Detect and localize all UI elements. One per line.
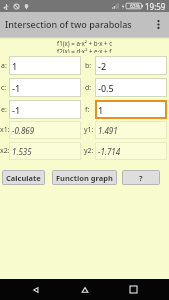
- button[interactable]: -1: [9, 78, 81, 97]
- staticText: a:: [1, 61, 9, 71]
- button[interactable]: Back: [24, 279, 48, 300]
- button[interactable]: 1: [95, 100, 167, 119]
- staticText: d:: [85, 83, 95, 93]
- staticText: -0.869: [12, 125, 35, 136]
- staticText: Calculate: [6, 173, 41, 183]
- button[interactable]: Home: [73, 279, 97, 300]
- button[interactable]: Recents: [121, 279, 145, 300]
- staticText: y1:: [84, 125, 94, 135]
- staticText: 1.491: [98, 125, 118, 136]
- button[interactable]: 1: [9, 56, 81, 75]
- staticText: 1: [12, 60, 18, 72]
- staticText: c:: [1, 83, 9, 93]
- staticText: Intersection of two parabolas: [5, 18, 132, 30]
- staticText: 63%: [130, 3, 140, 10]
- staticText: 19:59: [145, 1, 166, 12]
- staticText: y2:: [84, 146, 94, 156]
- button[interactable]: Calculate: [2, 170, 45, 185]
- button[interactable]: Function graph: [52, 170, 117, 185]
- staticText: -2: [98, 60, 107, 72]
- staticText: f:: [85, 105, 95, 115]
- staticText: ?: [139, 173, 143, 183]
- staticText: f1(x) = a·x² + b·x + c: [57, 39, 113, 47]
- staticText: x2:: [0, 146, 9, 156]
- button[interactable]: More options: [148, 12, 169, 37]
- staticText: e:: [1, 105, 9, 115]
- staticText: -0.5: [98, 82, 114, 94]
- staticText: 1: [98, 104, 104, 116]
- button[interactable]: -2: [95, 56, 167, 75]
- staticText: -1: [12, 104, 21, 116]
- button[interactable]: -0.5: [95, 78, 167, 97]
- staticText: Function graph: [56, 173, 113, 183]
- button[interactable]: -1: [9, 100, 81, 119]
- button[interactable]: ?: [122, 170, 160, 185]
- staticText: x1:: [0, 125, 9, 135]
- staticText: b:: [85, 61, 95, 71]
- staticText: -1.714: [98, 146, 121, 157]
- staticText: 1.535: [12, 146, 32, 157]
- staticText: -1: [12, 82, 21, 94]
- staticText: f2(x) = d·x² + e·x + f: [57, 47, 112, 53]
